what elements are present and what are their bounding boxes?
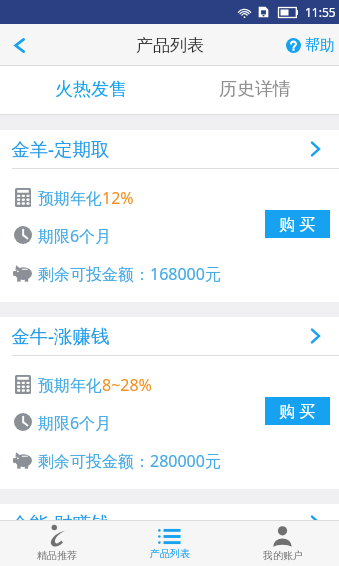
staticText: 预期年化12%	[38, 187, 134, 207]
staticText: 购 买	[279, 213, 316, 235]
staticText: 预期年化8~28%	[38, 374, 152, 394]
button[interactable]: 购 买	[265, 210, 330, 238]
staticText: 精品推荐	[37, 549, 77, 562]
button[interactable]: 购 买	[265, 397, 330, 425]
staticText: 11:55	[305, 4, 336, 20]
staticText: 剩余可投金额：280000元	[38, 450, 221, 470]
staticText: 产品列表	[136, 35, 204, 56]
button[interactable]: 我的账户	[226, 521, 339, 566]
staticText: 期限6个月	[38, 412, 112, 432]
button[interactable]: 金牛-涨赚钱	[0, 317, 339, 355]
button[interactable]: 精品推荐	[0, 521, 113, 566]
button[interactable]: 产品列表	[113, 521, 226, 566]
staticText: 历史详情	[219, 78, 291, 101]
staticText: 购 买	[279, 400, 316, 422]
staticText: 金羊-定期取	[11, 136, 110, 161]
button[interactable]: 帮助	[278, 24, 339, 66]
button[interactable]: 历史详情	[173, 66, 337, 115]
staticText: 金牛-涨赚钱	[11, 323, 110, 348]
staticText: 期限6个月	[38, 225, 112, 245]
staticText: 帮助	[305, 36, 335, 55]
staticText: 金能-财赚钱	[11, 510, 110, 535]
staticText: 火热发售	[55, 78, 127, 101]
staticText: 剩余可投金额：168000元	[38, 263, 221, 283]
button[interactable]: 火热发售	[9, 66, 173, 115]
staticText: 产品列表	[150, 547, 190, 560]
button[interactable]: Back	[0, 24, 38, 66]
button[interactable]: 金羊-定期取	[0, 130, 339, 168]
staticText: 我的账户	[263, 549, 303, 562]
button[interactable]: 金能-财赚钱	[0, 504, 339, 542]
